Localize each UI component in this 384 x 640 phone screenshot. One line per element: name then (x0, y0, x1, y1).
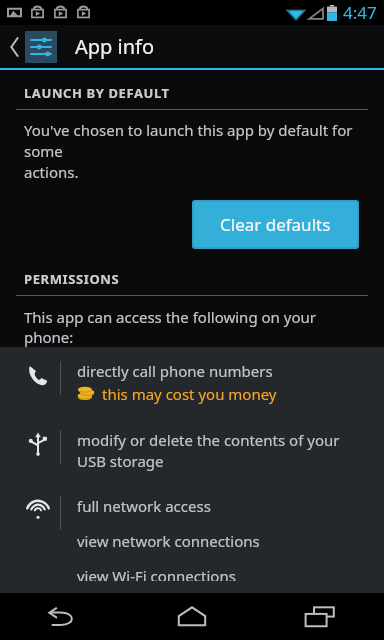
staticText: Clear defaults (220, 213, 331, 236)
button[interactable]: directly call phone numbers (0, 347, 384, 418)
button[interactable]: Home (128, 593, 256, 640)
button[interactable]: Clear defaults (194, 202, 357, 247)
staticText: 4:47 (343, 1, 377, 24)
staticText: this may cost you money (102, 384, 277, 404)
button[interactable]: Navigate up (0, 27, 63, 67)
staticText: LAUNCH BY DEFAULT (24, 84, 170, 102)
staticText: This app can access the following on you… (24, 307, 368, 347)
button[interactable]: modify or delete the contents of your US… (0, 418, 384, 484)
staticText: full network access (77, 496, 211, 516)
button[interactable]: Recent apps (256, 593, 384, 640)
staticText: view network connections (77, 531, 260, 551)
staticText: You've chosen to launch this app by defa… (24, 120, 364, 183)
staticText: PERMISSIONS (24, 270, 120, 288)
staticText: directly call phone numbers (77, 361, 273, 381)
staticText: App info (75, 33, 155, 60)
button[interactable]: Back (0, 593, 128, 640)
staticText: modify or delete the contents of your US… (77, 430, 340, 472)
button[interactable]: full network access (0, 484, 384, 593)
staticText: view Wi-Fi connections (77, 566, 236, 581)
